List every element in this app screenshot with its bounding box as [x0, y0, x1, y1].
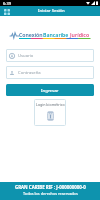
staticText: Contraseña — [18, 70, 41, 76]
button[interactable]: Menu — [2, 7, 11, 16]
button[interactable]: Usuario — [6, 49, 94, 62]
staticText: Ingresar — [41, 87, 59, 93]
staticText: Todos los derechos reservados — [23, 191, 78, 196]
staticText: Iniciar Sesión — [38, 8, 65, 14]
button[interactable]: Contraseña — [6, 66, 94, 79]
staticText: Usuario — [18, 53, 34, 59]
staticText: Conexión — [19, 31, 43, 38]
staticText: Bancaribe — [43, 31, 69, 38]
staticText: Jurídico — [70, 31, 90, 38]
staticText: GRAN CARIBE RIF : J-000000000-0 — [15, 184, 86, 190]
staticText: 6:39 — [3, 1, 11, 6]
button[interactable]: Login biométrico — [34, 99, 66, 126]
staticText: Login biométrico — [36, 102, 65, 107]
button[interactable]: Ingresar — [6, 84, 94, 96]
